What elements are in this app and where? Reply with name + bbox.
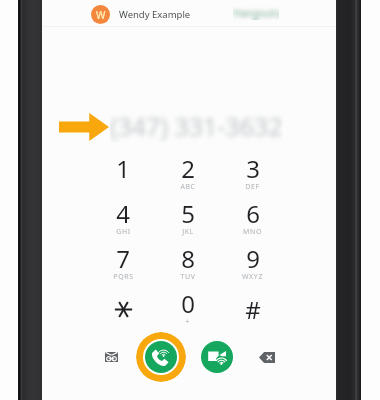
button[interactable]	[91, 285, 155, 330]
button[interactable]: 0	[155, 285, 220, 330]
staticText: PQRS	[113, 272, 134, 282]
staticText: ABC	[180, 182, 196, 192]
button[interactable]: 2	[155, 150, 220, 195]
staticText: +	[185, 317, 190, 327]
button[interactable]: Call	[136, 332, 186, 382]
staticText: 6	[246, 197, 260, 230]
staticText: 7	[116, 242, 130, 275]
staticText: WXYZ	[242, 272, 263, 282]
button[interactable]: 3	[220, 150, 285, 195]
button[interactable]: 7	[91, 240, 155, 285]
staticText: JKL	[182, 227, 194, 237]
staticText: (347) 331-3632	[110, 109, 283, 143]
button[interactable]: #	[220, 285, 285, 330]
staticText: 3	[246, 152, 260, 185]
button[interactable]: 1	[91, 150, 155, 195]
staticText: 8	[181, 242, 195, 275]
staticText: DEF	[245, 182, 260, 192]
button[interactable]: W	[91, 5, 191, 24]
button[interactable]: Voicemail	[93, 339, 129, 375]
staticText: Wendy Example	[119, 8, 191, 21]
staticText: 4	[116, 197, 130, 230]
staticText: MNO	[243, 227, 262, 237]
button[interactable]: 5	[155, 195, 220, 240]
button[interactable]: Backspace	[249, 339, 285, 375]
staticText: W	[96, 8, 106, 22]
staticText: 1	[116, 152, 130, 185]
staticText: 5	[181, 197, 195, 230]
staticText: 2	[181, 152, 195, 185]
button[interactable]: 9	[220, 240, 285, 285]
button[interactable]: Video call	[201, 341, 233, 373]
staticText: GHI	[116, 227, 131, 237]
button[interactable]: 8	[155, 240, 220, 285]
staticText: Hangouts	[233, 6, 279, 20]
staticText: 9	[246, 242, 260, 275]
button[interactable]: 4	[91, 195, 155, 240]
staticText: #	[245, 293, 261, 326]
button[interactable]: 6	[220, 195, 285, 240]
staticText: TUV	[180, 272, 196, 282]
staticText: 0	[181, 287, 195, 320]
